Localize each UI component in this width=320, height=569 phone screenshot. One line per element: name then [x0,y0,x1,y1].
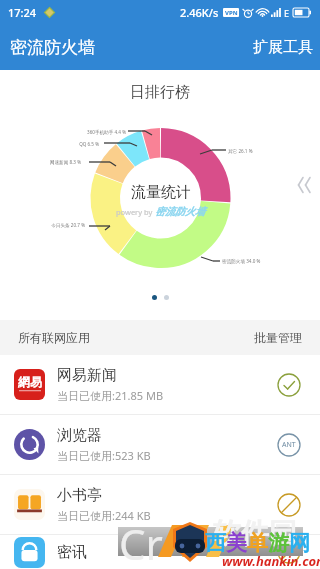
button[interactable]: Toggle network access [276,372,302,398]
button[interactable]: Next page [292,171,320,199]
button[interactable]: 小书亭 [0,475,320,534]
staticText: 360手机助手 4.4 % [56,129,126,135]
staticText: 单 [247,530,268,556]
staticText: 小书亭 [57,486,102,505]
staticText: 密流防火墙 [10,37,95,58]
staticText: Cr [119,515,163,569]
staticText: 美 [226,530,247,556]
staticText: ANT [282,440,296,450]
staticText: 流量统计 [131,183,191,202]
staticText: 網易 [18,374,42,389]
button[interactable]: Toggle network access [276,539,302,565]
staticText: VPN [225,9,238,17]
staticText: 当日已使用:244 KB [57,508,151,523]
button[interactable]: 扩展工具 [241,28,320,67]
staticText: 17:24 [8,5,37,20]
staticText: 今日头条 20.7 % [15,222,85,228]
staticText: 密流防火墙 34.0 % [222,258,261,264]
staticText: 当日已使用:523 KB [57,448,151,463]
button[interactable]: 密讯 [0,535,320,569]
staticText: 西 [205,530,226,556]
staticText: 当日已使用:21.85 MB [57,388,164,403]
button[interactable]: 批量管理 [254,330,302,345]
staticText: 浏览器 [57,426,102,445]
staticText: E [284,7,290,19]
staticText: 软件园 [213,516,297,551]
staticText: 日排行榜 [130,83,190,102]
button[interactable]: Toggle network access [276,432,302,458]
staticText: QQ 6.5 % [29,141,99,147]
staticText: 批量管理 [254,330,302,345]
staticText: 密流防火墙 [155,205,205,218]
staticText: www.hankin.com [222,552,320,569]
staticText: 网 [289,530,310,556]
staticText: 游 [268,530,289,556]
staticText: powery by [116,207,155,217]
button[interactable]: 浏览器 [0,415,320,474]
staticText: 密讯 [57,543,87,562]
staticText: 所有联网应用 [18,330,90,345]
staticText: 网易新闻 [57,366,117,385]
staticText: 扩展工具 [253,38,313,57]
staticText: 其它 26.1 % [228,148,253,154]
staticText: 网速新闻 8.3 % [11,159,81,165]
button[interactable]: Toggle network access [276,492,302,518]
button[interactable]: 網易 [0,355,320,414]
staticText: 2.46K/s [180,5,219,20]
